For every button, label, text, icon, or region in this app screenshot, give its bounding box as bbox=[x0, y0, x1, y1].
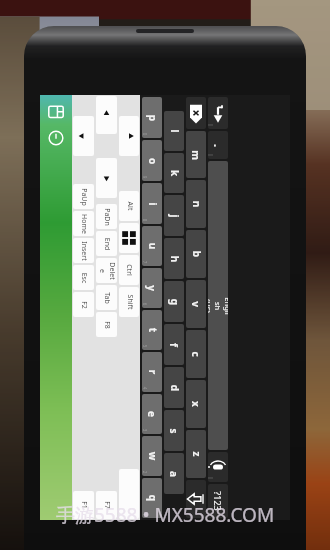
staticText: F1 bbox=[79, 501, 89, 509]
button[interactable]: PaDn bbox=[96, 204, 117, 229]
button[interactable]: 3 bbox=[142, 394, 162, 434]
button[interactable]: Windows key bbox=[119, 223, 139, 253]
staticText: m bbox=[189, 150, 203, 160]
staticText: h bbox=[167, 255, 181, 262]
staticText: 8 bbox=[142, 218, 147, 221]
staticText: Delete bbox=[96, 260, 116, 281]
button[interactable]: 1 bbox=[142, 478, 162, 518]
staticText: ?123 bbox=[212, 491, 224, 511]
button[interactable]: g bbox=[164, 281, 184, 322]
button[interactable]: 7 bbox=[142, 226, 162, 266]
button[interactable]: 0 bbox=[142, 97, 162, 138]
staticText: 7 bbox=[142, 260, 147, 263]
button[interactable]: Power bbox=[47, 129, 65, 147]
staticText: 手游5588 • MX5588.COM bbox=[56, 502, 275, 528]
staticText: u bbox=[145, 242, 159, 249]
button[interactable]: a bbox=[164, 453, 184, 494]
staticText: PaUp bbox=[79, 188, 89, 206]
button[interactable]: End bbox=[96, 231, 117, 256]
staticText: f bbox=[167, 343, 181, 347]
staticText: F2 bbox=[79, 301, 89, 309]
staticText: s bbox=[167, 428, 181, 434]
staticText: F8 bbox=[102, 321, 112, 329]
button[interactable]: Down arrow bbox=[96, 158, 117, 198]
button[interactable]: Esc bbox=[73, 265, 94, 290]
button[interactable]: Right arrow bbox=[119, 116, 139, 156]
button[interactable]: f bbox=[164, 324, 184, 365]
staticText: x bbox=[189, 401, 203, 407]
staticText: Tab bbox=[102, 292, 112, 304]
staticText: 3 bbox=[142, 428, 147, 431]
button[interactable]: F2 bbox=[73, 292, 94, 317]
button[interactable]: 8 bbox=[142, 183, 162, 224]
staticText: Home bbox=[79, 214, 89, 234]
button[interactable]: b bbox=[186, 230, 206, 278]
button[interactable]: 4 bbox=[142, 352, 162, 392]
staticText: i bbox=[145, 202, 159, 205]
button[interactable]: v bbox=[186, 280, 206, 328]
staticText: e bbox=[145, 411, 159, 417]
staticText: | bbox=[208, 476, 213, 479]
button[interactable]: Alt bbox=[119, 191, 139, 221]
button[interactable]: F7 bbox=[96, 491, 117, 519]
button[interactable]: Layout bbox=[40, 95, 72, 520]
staticText: l bbox=[167, 129, 181, 132]
button[interactable]: 5 bbox=[142, 310, 162, 350]
button[interactable]: k bbox=[164, 153, 184, 193]
button[interactable]: Voice input bbox=[208, 452, 228, 482]
button[interactable]: l bbox=[164, 111, 184, 151]
button[interactable]: Insert bbox=[73, 238, 94, 263]
button[interactable]: n bbox=[186, 180, 206, 228]
staticText: Shift bbox=[124, 294, 134, 309]
staticText: PaDn bbox=[102, 208, 112, 226]
button[interactable]: z bbox=[186, 430, 206, 478]
button[interactable]: ?123 bbox=[208, 484, 228, 518]
button[interactable]: s bbox=[164, 410, 184, 451]
button[interactable]: | bbox=[208, 131, 228, 159]
button[interactable]: x bbox=[186, 380, 206, 428]
staticText: | bbox=[208, 153, 213, 156]
staticText: . bbox=[210, 143, 225, 147]
button[interactable]: Backspace bbox=[186, 97, 206, 129]
staticText: 1 bbox=[142, 512, 147, 515]
button[interactable]: F1 bbox=[73, 491, 94, 519]
staticText: Insert bbox=[79, 241, 89, 261]
staticText: 2 bbox=[142, 470, 147, 473]
button[interactable]: 6 bbox=[142, 268, 162, 308]
button[interactable]: c bbox=[186, 330, 206, 378]
button[interactable]: Left arrow bbox=[73, 116, 94, 156]
staticText: End bbox=[101, 237, 111, 250]
button[interactable]: Layout bbox=[47, 103, 65, 121]
button[interactable]: d bbox=[164, 367, 184, 408]
button[interactable]: Tab bbox=[96, 285, 117, 310]
button[interactable]: Shift bbox=[119, 287, 139, 317]
staticText: Ctrl bbox=[124, 264, 134, 276]
staticText: o bbox=[145, 157, 159, 164]
button[interactable]: F8 bbox=[96, 312, 117, 337]
button[interactable]: Space bbox=[208, 161, 228, 450]
button[interactable]: Up arrow bbox=[96, 96, 117, 134]
button[interactable]: PaUp bbox=[73, 184, 94, 209]
staticText: Esc bbox=[78, 272, 88, 283]
button[interactable]: h bbox=[164, 238, 184, 279]
button[interactable]: Shift bbox=[186, 480, 206, 518]
button[interactable]: 2 bbox=[142, 436, 162, 476]
staticText: z bbox=[189, 451, 203, 456]
staticText: n bbox=[189, 200, 203, 207]
staticText: F7 bbox=[102, 501, 112, 509]
button[interactable]: j bbox=[164, 195, 184, 236]
button[interactable] bbox=[119, 469, 139, 519]
staticText: 5 bbox=[142, 344, 147, 347]
button[interactable]: Home bbox=[73, 211, 94, 236]
staticText: g bbox=[167, 298, 181, 305]
staticText: k bbox=[167, 169, 181, 176]
staticText: 4 bbox=[142, 386, 147, 389]
button[interactable]: Delete bbox=[96, 258, 117, 283]
button[interactable]: Ctrl bbox=[119, 255, 139, 285]
button[interactable]: 9 bbox=[142, 140, 162, 181]
button[interactable]: m bbox=[186, 131, 206, 178]
button[interactable]: Enter bbox=[208, 97, 228, 129]
staticText: | bbox=[208, 123, 213, 126]
staticText: r bbox=[145, 369, 159, 374]
staticText: y bbox=[145, 285, 159, 291]
